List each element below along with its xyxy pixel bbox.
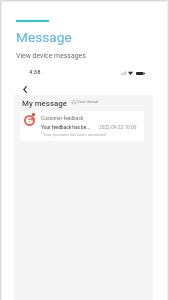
- staticText: View device messages: [16, 52, 86, 60]
- staticText: Clear Unread: [77, 100, 99, 104]
- staticText: Your question has been answered: [43, 132, 106, 137]
- staticText: 4:38: [29, 69, 41, 76]
- button[interactable]: Customer feedback: [20, 111, 144, 141]
- staticText: Message: [16, 29, 72, 45]
- staticText: Customer feedback: [41, 115, 84, 121]
- staticText: Your feedback has be...: [41, 125, 91, 131]
- staticText: 2022-09-22 10:00: [99, 125, 137, 131]
- button[interactable]: Clear Unread: [72, 100, 99, 104]
- button[interactable]: Back: [18, 82, 32, 96]
- staticText: My message: [22, 99, 67, 108]
